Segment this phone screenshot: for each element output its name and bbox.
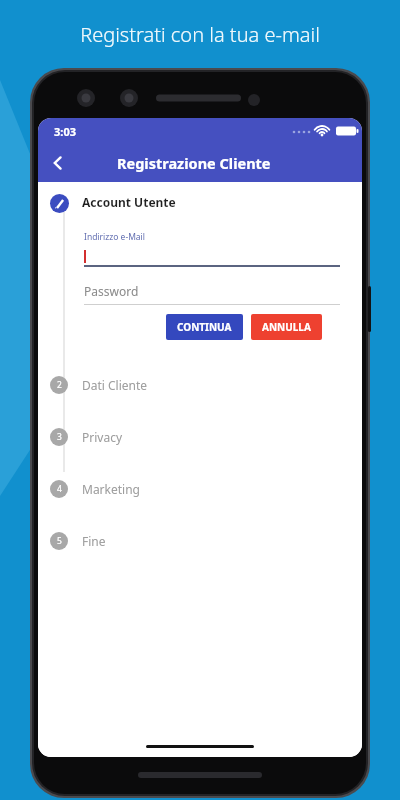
staticText: Indirizzo e-Mail	[84, 231, 145, 243]
staticText: Password	[84, 283, 139, 299]
button[interactable]: 5	[38, 532, 362, 550]
staticText: 3	[57, 431, 62, 443]
button[interactable]	[84, 247, 340, 265]
button[interactable]: Password	[84, 281, 340, 301]
staticText: 3:03	[54, 124, 76, 139]
button[interactable]: ANNULLA	[251, 314, 322, 340]
staticText: 5	[57, 535, 62, 547]
button[interactable]: CONTINUA	[166, 314, 243, 340]
staticText: Privacy	[82, 429, 123, 445]
staticText: Fine	[82, 533, 106, 549]
button[interactable]: 4	[38, 480, 362, 498]
staticText: 2	[57, 379, 62, 391]
button[interactable]: Account Utente	[38, 192, 362, 213]
staticText: Account Utente	[82, 194, 176, 210]
button[interactable]: Back	[38, 144, 78, 182]
staticText: CONTINUA	[177, 320, 232, 334]
staticText: Registrati con la tua e-mail	[80, 21, 320, 48]
staticText: ANNULLA	[262, 320, 311, 334]
staticText: Marketing	[82, 481, 140, 497]
staticText: Dati Cliente	[82, 377, 148, 393]
staticText: Registrazione Cliente	[117, 153, 271, 173]
staticText: 4	[57, 483, 62, 495]
button[interactable]: 2	[38, 376, 362, 394]
button[interactable]: 3	[38, 428, 362, 446]
